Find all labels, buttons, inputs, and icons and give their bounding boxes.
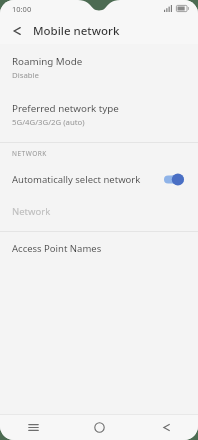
button[interactable]: Home [66, 414, 132, 440]
staticText: Access Point Names [12, 242, 102, 255]
staticText: 5G/4G/3G/2G (auto) [12, 117, 85, 128]
button[interactable]: Preferred network type [0, 100, 198, 130]
button[interactable]: Automatically select network toggle [164, 173, 184, 186]
button[interactable]: Access Point Names [0, 240, 198, 256]
staticText: Disable [12, 70, 40, 81]
staticText: Mobile network [33, 23, 120, 39]
button[interactable]: Network [0, 203, 198, 219]
staticText: Roaming Mode [12, 55, 83, 68]
button[interactable]: Recent apps [0, 414, 66, 440]
button[interactable]: Roaming Mode [0, 53, 198, 83]
button[interactable]: Back [4, 19, 28, 43]
staticText: Network [12, 205, 51, 218]
staticText: Automatically select network [12, 173, 164, 186]
button[interactable]: Back [132, 414, 198, 440]
staticText: 10:00 [12, 4, 32, 14]
staticText: NETWORK [12, 149, 47, 158]
staticText: Preferred network type [12, 102, 119, 115]
button[interactable]: Automatically select network [0, 168, 198, 190]
